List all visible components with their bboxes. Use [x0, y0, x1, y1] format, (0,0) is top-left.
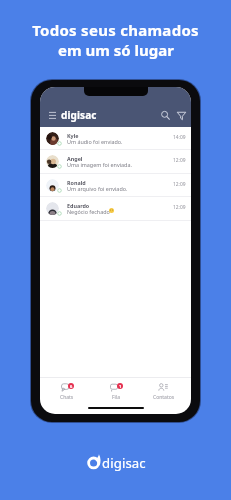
staticText: Todos seus chamados	[32, 20, 199, 40]
staticText: 14:09	[173, 134, 186, 141]
button[interactable]: Menu	[45, 108, 59, 122]
staticText: Fila	[112, 394, 120, 401]
button[interactable]: 6	[46, 378, 88, 401]
staticText: Um arquivo foi enviado.	[67, 185, 128, 192]
staticText: Contatos	[153, 394, 175, 401]
button[interactable]: Kyle	[40, 127, 191, 150]
staticText: em um só lugar	[58, 40, 174, 60]
staticText: 12:09	[173, 157, 186, 164]
button[interactable]: Contatos	[143, 378, 185, 401]
button[interactable]: Search	[159, 109, 172, 122]
staticText: 12:09	[173, 181, 186, 188]
button[interactable]: Ronald	[40, 174, 191, 197]
staticText: 1	[119, 384, 122, 389]
staticText: 6	[70, 384, 73, 389]
staticText: digisac	[102, 454, 146, 472]
button[interactable]: Eduardo	[40, 197, 191, 221]
staticText: 12:09	[173, 204, 186, 211]
staticText: Um áudio foi enviado.	[67, 138, 123, 145]
button[interactable]: 1	[95, 378, 137, 401]
staticText: Kyle	[67, 132, 79, 139]
button[interactable]: Filter	[175, 109, 188, 122]
button[interactable]: Angel	[40, 150, 191, 174]
staticText: Chats	[60, 394, 74, 401]
staticText: digisac	[61, 108, 97, 122]
staticText: Angel	[67, 155, 83, 162]
staticText: Uma imagem foi enviada.	[67, 161, 132, 168]
staticText: Ronald	[67, 179, 86, 186]
staticText: Eduardo	[67, 202, 90, 209]
staticText: Negócio fechado	[67, 208, 110, 215]
